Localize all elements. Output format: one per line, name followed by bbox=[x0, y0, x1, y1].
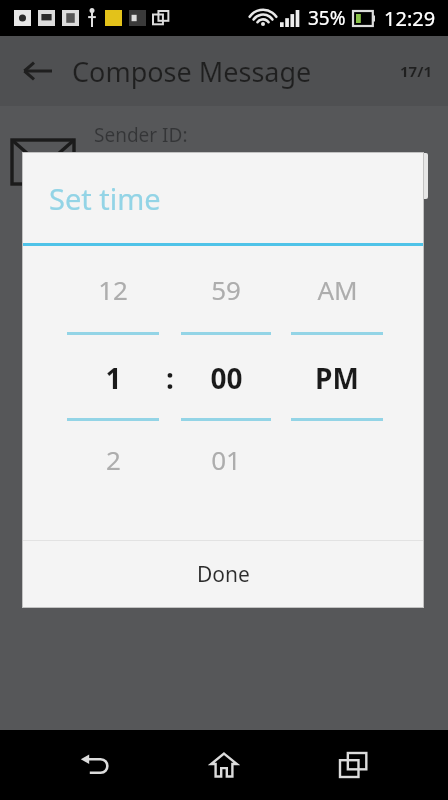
button[interactable]: Home bbox=[188, 730, 260, 800]
staticText: 35% bbox=[308, 5, 346, 31]
button[interactable]: 01 bbox=[181, 442, 271, 477]
button[interactable]: PM bbox=[291, 359, 383, 397]
staticText: 17/1 bbox=[400, 61, 432, 81]
staticText: Done bbox=[197, 560, 250, 589]
staticText: Set time bbox=[49, 179, 161, 218]
button[interactable]: 59 bbox=[181, 272, 271, 307]
button[interactable]: 2 bbox=[67, 442, 159, 477]
staticText: AM bbox=[317, 272, 358, 307]
staticText: 59 bbox=[211, 272, 241, 307]
staticText: 00 bbox=[210, 359, 243, 397]
button[interactable]: Recents bbox=[318, 730, 390, 800]
staticText: 12 bbox=[98, 272, 128, 307]
button[interactable]: 00 bbox=[181, 359, 271, 397]
button[interactable]: Schedule bbox=[0, 744, 223, 800]
button[interactable]: 12 bbox=[67, 272, 159, 307]
staticText: 1 bbox=[105, 359, 122, 397]
staticText: Compose Message bbox=[72, 53, 312, 90]
staticText: Schedule bbox=[62, 757, 161, 788]
staticText: Sender ID: bbox=[94, 122, 188, 148]
button[interactable]: Navigate up bbox=[14, 48, 60, 94]
button[interactable]: Back bbox=[58, 730, 130, 800]
staticText: Send bbox=[310, 757, 364, 788]
button[interactable]: Done bbox=[23, 541, 423, 607]
button[interactable]: 1 bbox=[67, 359, 159, 397]
staticText: PM bbox=[315, 359, 359, 397]
staticText: 2 bbox=[106, 442, 121, 477]
button[interactable]: Send bbox=[225, 744, 448, 800]
staticText: 01 bbox=[211, 442, 241, 477]
staticText: : bbox=[166, 359, 174, 397]
staticText: 12:29 bbox=[384, 5, 436, 32]
button[interactable]: AM bbox=[291, 272, 383, 307]
